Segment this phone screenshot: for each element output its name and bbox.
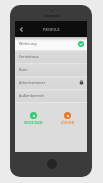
staticText: Ferienhaus — [19, 54, 39, 59]
staticText: Wohnung — [19, 41, 37, 46]
staticText: PROFILE — [43, 27, 60, 32]
button[interactable]: Ferienhaus — [15, 50, 87, 63]
button[interactable]: NEUER RAUM — [16, 112, 50, 125]
button[interactable]: LÖSCHEN — [50, 112, 84, 125]
staticText: Büro — [19, 67, 28, 72]
button[interactable]: Büro — [15, 63, 87, 76]
staticText: LÖSCHEN — [61, 121, 74, 125]
staticText: Außenbereich — [19, 93, 44, 98]
button[interactable]: Back — [15, 21, 27, 37]
button[interactable]: Arbeitszimmer — [15, 76, 87, 89]
staticText: Arbeitszimmer — [19, 80, 46, 85]
button[interactable]: Wohnung — [15, 37, 87, 50]
button[interactable]: Außenbereich — [15, 89, 87, 102]
staticText: NEUER RAUM — [24, 121, 43, 125]
